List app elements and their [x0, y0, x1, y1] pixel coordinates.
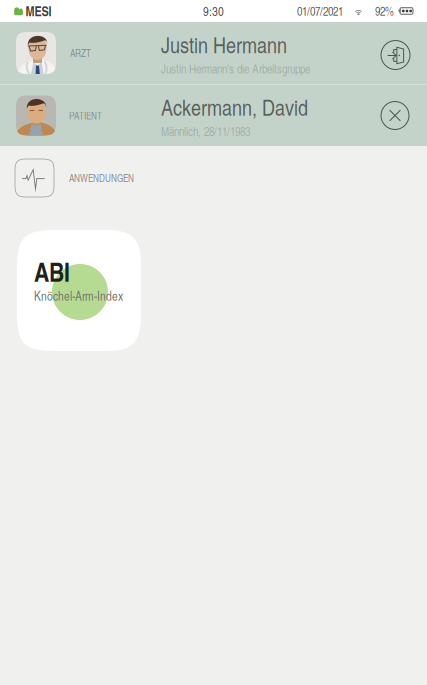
- staticText: 01/07/2021: [297, 3, 343, 19]
- staticText: Ackermann, David: [161, 92, 308, 122]
- staticText: ABI: [34, 253, 70, 290]
- staticText: Knöchel-Arm-Index: [34, 287, 123, 304]
- staticText: Justin Hermann: [161, 29, 287, 59]
- staticText: Justin Hermann's die Arbeitsgruppe: [161, 60, 310, 77]
- staticText: ARZT: [70, 46, 91, 60]
- staticText: Männlich, 28/11/1983: [161, 123, 250, 139]
- button[interactable]: ABI: [17, 230, 141, 351]
- button[interactable]: ARZT: [0, 22, 427, 84]
- staticText: 92%: [375, 3, 394, 19]
- button[interactable]: PATIENT: [0, 85, 427, 146]
- staticText: PATIENT: [69, 109, 102, 122]
- staticText: ANWENDUNGEN: [69, 171, 134, 185]
- staticText: MESI: [25, 2, 51, 20]
- staticText: 9:30: [203, 2, 224, 20]
